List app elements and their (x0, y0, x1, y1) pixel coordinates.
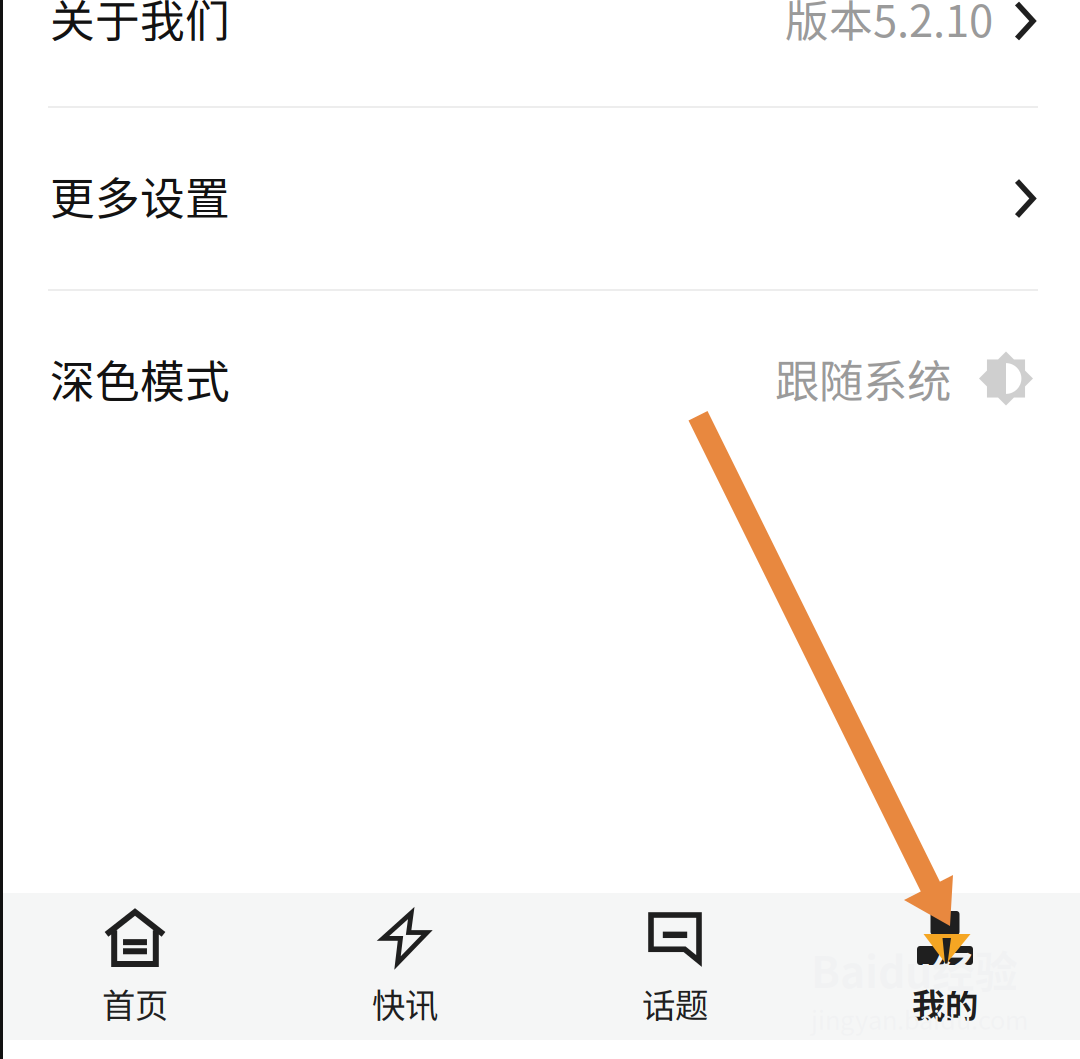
button[interactable]: 关于我们 (0, 0, 1080, 106)
button[interactable]: 快讯 (270, 893, 540, 1040)
button[interactable]: 我的 (810, 893, 1080, 1040)
staticText: Baidu经验 (811, 938, 1018, 1000)
button[interactable]: 首页 (0, 893, 270, 1040)
staticText: 首页 (102, 979, 168, 1027)
staticText: jingyan.baidu.com (811, 1000, 1028, 1037)
staticText: 深色模式 (50, 346, 230, 411)
staticText: 快讯 (372, 979, 438, 1027)
button[interactable]: 深色模式 (0, 291, 1080, 472)
staticText: 版本5.2.10 (785, 0, 993, 50)
button[interactable]: 话题 (540, 893, 810, 1040)
staticText: 跟随系统 (775, 346, 951, 411)
staticText: 我的 (912, 979, 978, 1027)
staticText: 关于我们 (50, 0, 230, 50)
staticText: 话题 (642, 979, 708, 1027)
staticText: 更多设置 (50, 163, 230, 228)
button[interactable]: 更多设置 (0, 108, 1080, 289)
